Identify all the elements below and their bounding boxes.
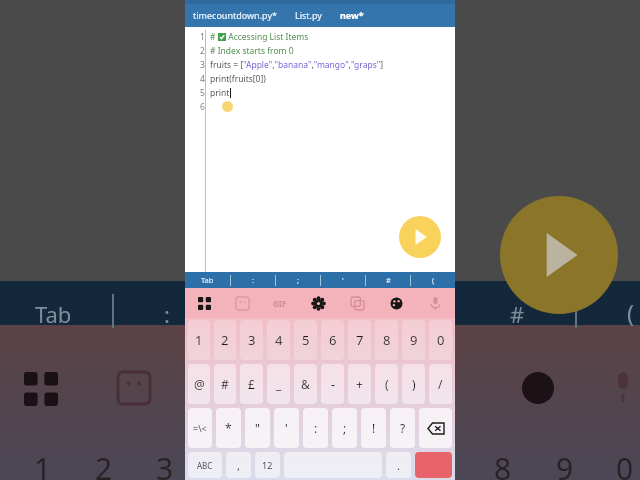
staticText: timecountdown.py* — [193, 9, 277, 21]
button[interactable]: ( — [375, 364, 398, 404]
staticText: Accessing List Items — [226, 31, 309, 43]
button[interactable]: # — [366, 272, 410, 288]
button[interactable]: £ — [240, 364, 263, 404]
staticText: 0 — [437, 331, 445, 349]
staticText: _ — [276, 376, 282, 392]
button[interactable]: Enter — [415, 452, 452, 478]
button[interactable]: 5 — [294, 320, 317, 360]
staticText: + — [356, 376, 363, 392]
staticText: 9 — [410, 331, 418, 349]
staticText: ( — [432, 275, 435, 285]
staticText: # Index starts from 0 — [210, 45, 294, 57]
button[interactable]: GIF — [261, 288, 299, 318]
staticText: Tab — [35, 299, 72, 329]
staticText: 0 — [616, 448, 634, 480]
button[interactable]: ; — [276, 272, 320, 288]
button[interactable]: 7 — [348, 320, 371, 360]
button[interactable]: 6 — [321, 320, 344, 360]
staticText: ! — [372, 420, 376, 436]
staticText: # — [221, 376, 229, 392]
staticText: . — [397, 458, 400, 473]
button[interactable]: : — [303, 408, 328, 448]
button[interactable]: Backspace — [419, 408, 452, 448]
button[interactable]: : — [231, 272, 275, 288]
button[interactable]: Theme — [377, 288, 416, 318]
button[interactable]: Apps — [185, 288, 223, 318]
button[interactable]: + — [348, 364, 371, 404]
staticText: print(fruits[0]) — [210, 73, 266, 85]
button[interactable]: ABC — [188, 452, 222, 478]
button[interactable]: , — [226, 452, 251, 478]
button[interactable]: ) — [402, 364, 425, 404]
button[interactable]: Voice input — [416, 288, 455, 318]
staticText: - — [331, 376, 335, 392]
button[interactable]: Settings — [299, 288, 338, 318]
staticText: print — [210, 87, 230, 99]
button[interactable]: new* — [340, 9, 364, 21]
button[interactable]: @ — [188, 364, 210, 404]
button[interactable]: 3 — [240, 320, 263, 360]
staticText: 2 — [200, 45, 205, 57]
button[interactable]: & — [294, 364, 317, 404]
staticText: ) — [412, 376, 416, 392]
staticText: # — [210, 31, 218, 43]
staticText: 2 — [221, 331, 229, 349]
staticText: Tab — [201, 275, 214, 285]
staticText: ( — [627, 296, 635, 329]
button[interactable]: - — [321, 364, 344, 404]
button[interactable]: 8 — [375, 320, 398, 360]
staticText: ? — [400, 420, 406, 436]
button[interactable]: ? — [390, 408, 415, 448]
button[interactable]: _ — [267, 364, 290, 404]
staticText: 8 — [494, 448, 512, 480]
button[interactable]: List.py — [295, 9, 322, 21]
staticText: # — [386, 275, 391, 285]
staticText: fruits = ["Apple","banana","mango","grap… — [210, 59, 384, 71]
staticText: , — [237, 458, 240, 473]
button[interactable]: ' — [321, 272, 365, 288]
staticText: ABC — [197, 460, 213, 471]
staticText: 9 — [556, 448, 574, 480]
staticText: 12 — [262, 459, 273, 471]
button[interactable]: Run — [399, 216, 441, 258]
button[interactable]: . — [386, 452, 411, 478]
staticText: GIF — [273, 298, 287, 309]
button[interactable]: 4 — [267, 320, 290, 360]
button[interactable]: # — [214, 364, 236, 404]
staticText: 4 — [200, 73, 205, 85]
button[interactable]: 0 — [429, 320, 452, 360]
staticText: 6 — [200, 101, 205, 113]
staticText: 3 — [156, 448, 174, 480]
button[interactable]: Stickers — [223, 288, 261, 318]
button[interactable]: 2 — [214, 320, 236, 360]
staticText: ' — [342, 275, 344, 285]
button[interactable]: timecountdown.py* — [193, 9, 277, 21]
button[interactable]: " — [245, 408, 270, 448]
staticText: : — [252, 275, 255, 285]
button[interactable]: Tab — [185, 272, 230, 288]
staticText: ( — [385, 376, 389, 392]
button[interactable]: ! — [361, 408, 386, 448]
button[interactable]: * — [216, 408, 241, 448]
staticText: * — [225, 420, 232, 436]
staticText: 1 — [200, 31, 205, 43]
button[interactable]: ( — [411, 272, 455, 288]
staticText: 2 — [95, 448, 113, 480]
button[interactable]: 12 — [255, 452, 280, 478]
button[interactable]: ; — [332, 408, 357, 448]
staticText: / — [438, 376, 443, 392]
button[interactable]: =\< — [188, 408, 212, 448]
button[interactable]: 1 — [188, 320, 210, 360]
staticText: ; — [297, 275, 300, 285]
staticText: 1 — [34, 448, 52, 480]
button[interactable]: 9 — [402, 320, 425, 360]
staticText: : — [164, 299, 170, 329]
staticText: =\< — [193, 422, 207, 434]
button[interactable]: ' — [274, 408, 299, 448]
staticText: ' — [285, 420, 288, 436]
staticText: : — [314, 420, 318, 436]
staticText: 5 — [302, 331, 310, 349]
button[interactable]: Translate — [338, 288, 377, 318]
button[interactable]: / — [429, 364, 452, 404]
